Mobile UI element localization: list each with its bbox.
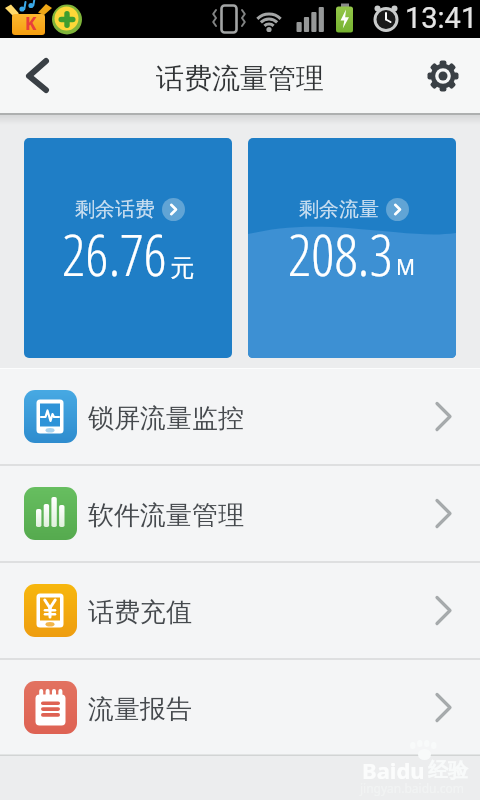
button[interactable] bbox=[0, 38, 70, 113]
staticText: 13:41 bbox=[405, 1, 478, 35]
button[interactable]: 话费充值 bbox=[0, 562, 480, 659]
staticText: 流量报告 bbox=[88, 693, 192, 726]
staticText: 元 bbox=[170, 253, 194, 283]
staticText: 208.3 bbox=[288, 214, 393, 293]
staticText: 话费充值 bbox=[88, 596, 192, 629]
button[interactable]: 流量报告 bbox=[0, 659, 480, 756]
button[interactable] bbox=[408, 38, 480, 113]
button[interactable]: 锁屏流量监控 bbox=[0, 368, 480, 465]
staticText: 经验 bbox=[428, 758, 468, 783]
staticText: Baidu bbox=[362, 755, 425, 785]
staticText: 剩余流量 bbox=[299, 197, 379, 222]
button[interactable]: 剩余流量 bbox=[248, 138, 456, 358]
staticText: 话费流量管理 bbox=[156, 61, 324, 96]
staticText: K bbox=[25, 12, 37, 35]
button[interactable]: 软件流量管理 bbox=[0, 465, 480, 562]
staticText: 剩余话费 bbox=[75, 197, 155, 222]
staticText: 26.76 bbox=[62, 214, 167, 293]
staticText: 锁屏流量监控 bbox=[88, 402, 244, 435]
staticText: M bbox=[396, 253, 416, 282]
staticText: 软件流量管理 bbox=[88, 499, 244, 532]
button[interactable]: 剩余话费 bbox=[24, 138, 232, 358]
